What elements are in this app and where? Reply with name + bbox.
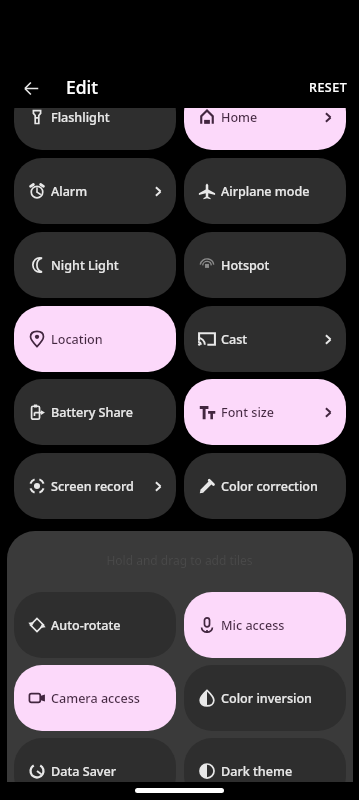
button[interactable]: Camera access (14, 665, 176, 731)
button[interactable]: Screen record (14, 453, 176, 519)
button[interactable]: Hotspot (184, 232, 346, 298)
staticText: Hold and drag to add tiles (0, 552, 359, 568)
button[interactable]: RESET (303, 76, 354, 99)
staticText: Auto-rotate (51, 617, 121, 634)
button[interactable]: Cast (184, 306, 346, 372)
button[interactable]: Color inversion (184, 665, 346, 731)
staticText: Hotspot (221, 257, 270, 274)
button[interactable]: Auto-rotate (14, 592, 176, 658)
staticText: Alarm (51, 183, 88, 200)
button[interactable]: Font size (184, 379, 346, 445)
staticText: Color inversion (221, 690, 312, 707)
button[interactable]: Dark theme (184, 738, 346, 800)
staticText: Data Saver (51, 763, 117, 780)
button[interactable]: Location (14, 306, 176, 372)
button[interactable]: Airplane mode (184, 158, 346, 224)
button[interactable]: Mic access (184, 592, 346, 658)
staticText: Cast (221, 331, 248, 348)
button[interactable]: Battery Share (14, 379, 176, 445)
staticText: Edit (66, 75, 99, 99)
staticText: RESET (309, 79, 348, 96)
button[interactable]: Color correction (184, 453, 346, 519)
staticText: Flashlight (51, 109, 110, 126)
staticText: Screen record (51, 478, 134, 495)
button[interactable]: Back (17, 74, 45, 102)
staticText: Dark theme (221, 763, 293, 780)
staticText: Location (51, 331, 103, 348)
staticText: Battery Share (51, 404, 133, 421)
staticText: Mic access (221, 617, 285, 634)
button[interactable]: Flashlight (14, 84, 176, 150)
button[interactable]: Data Saver (14, 738, 176, 800)
staticText: Airplane mode (221, 183, 310, 200)
button[interactable]: Home (184, 84, 346, 150)
staticText: Color correction (221, 478, 318, 495)
button[interactable]: Alarm (14, 158, 176, 224)
staticText: Font size (221, 404, 275, 421)
staticText: Night Light (51, 257, 119, 274)
staticText: Camera access (51, 690, 140, 707)
button[interactable]: Night Light (14, 232, 176, 298)
staticText: Home (221, 109, 258, 126)
